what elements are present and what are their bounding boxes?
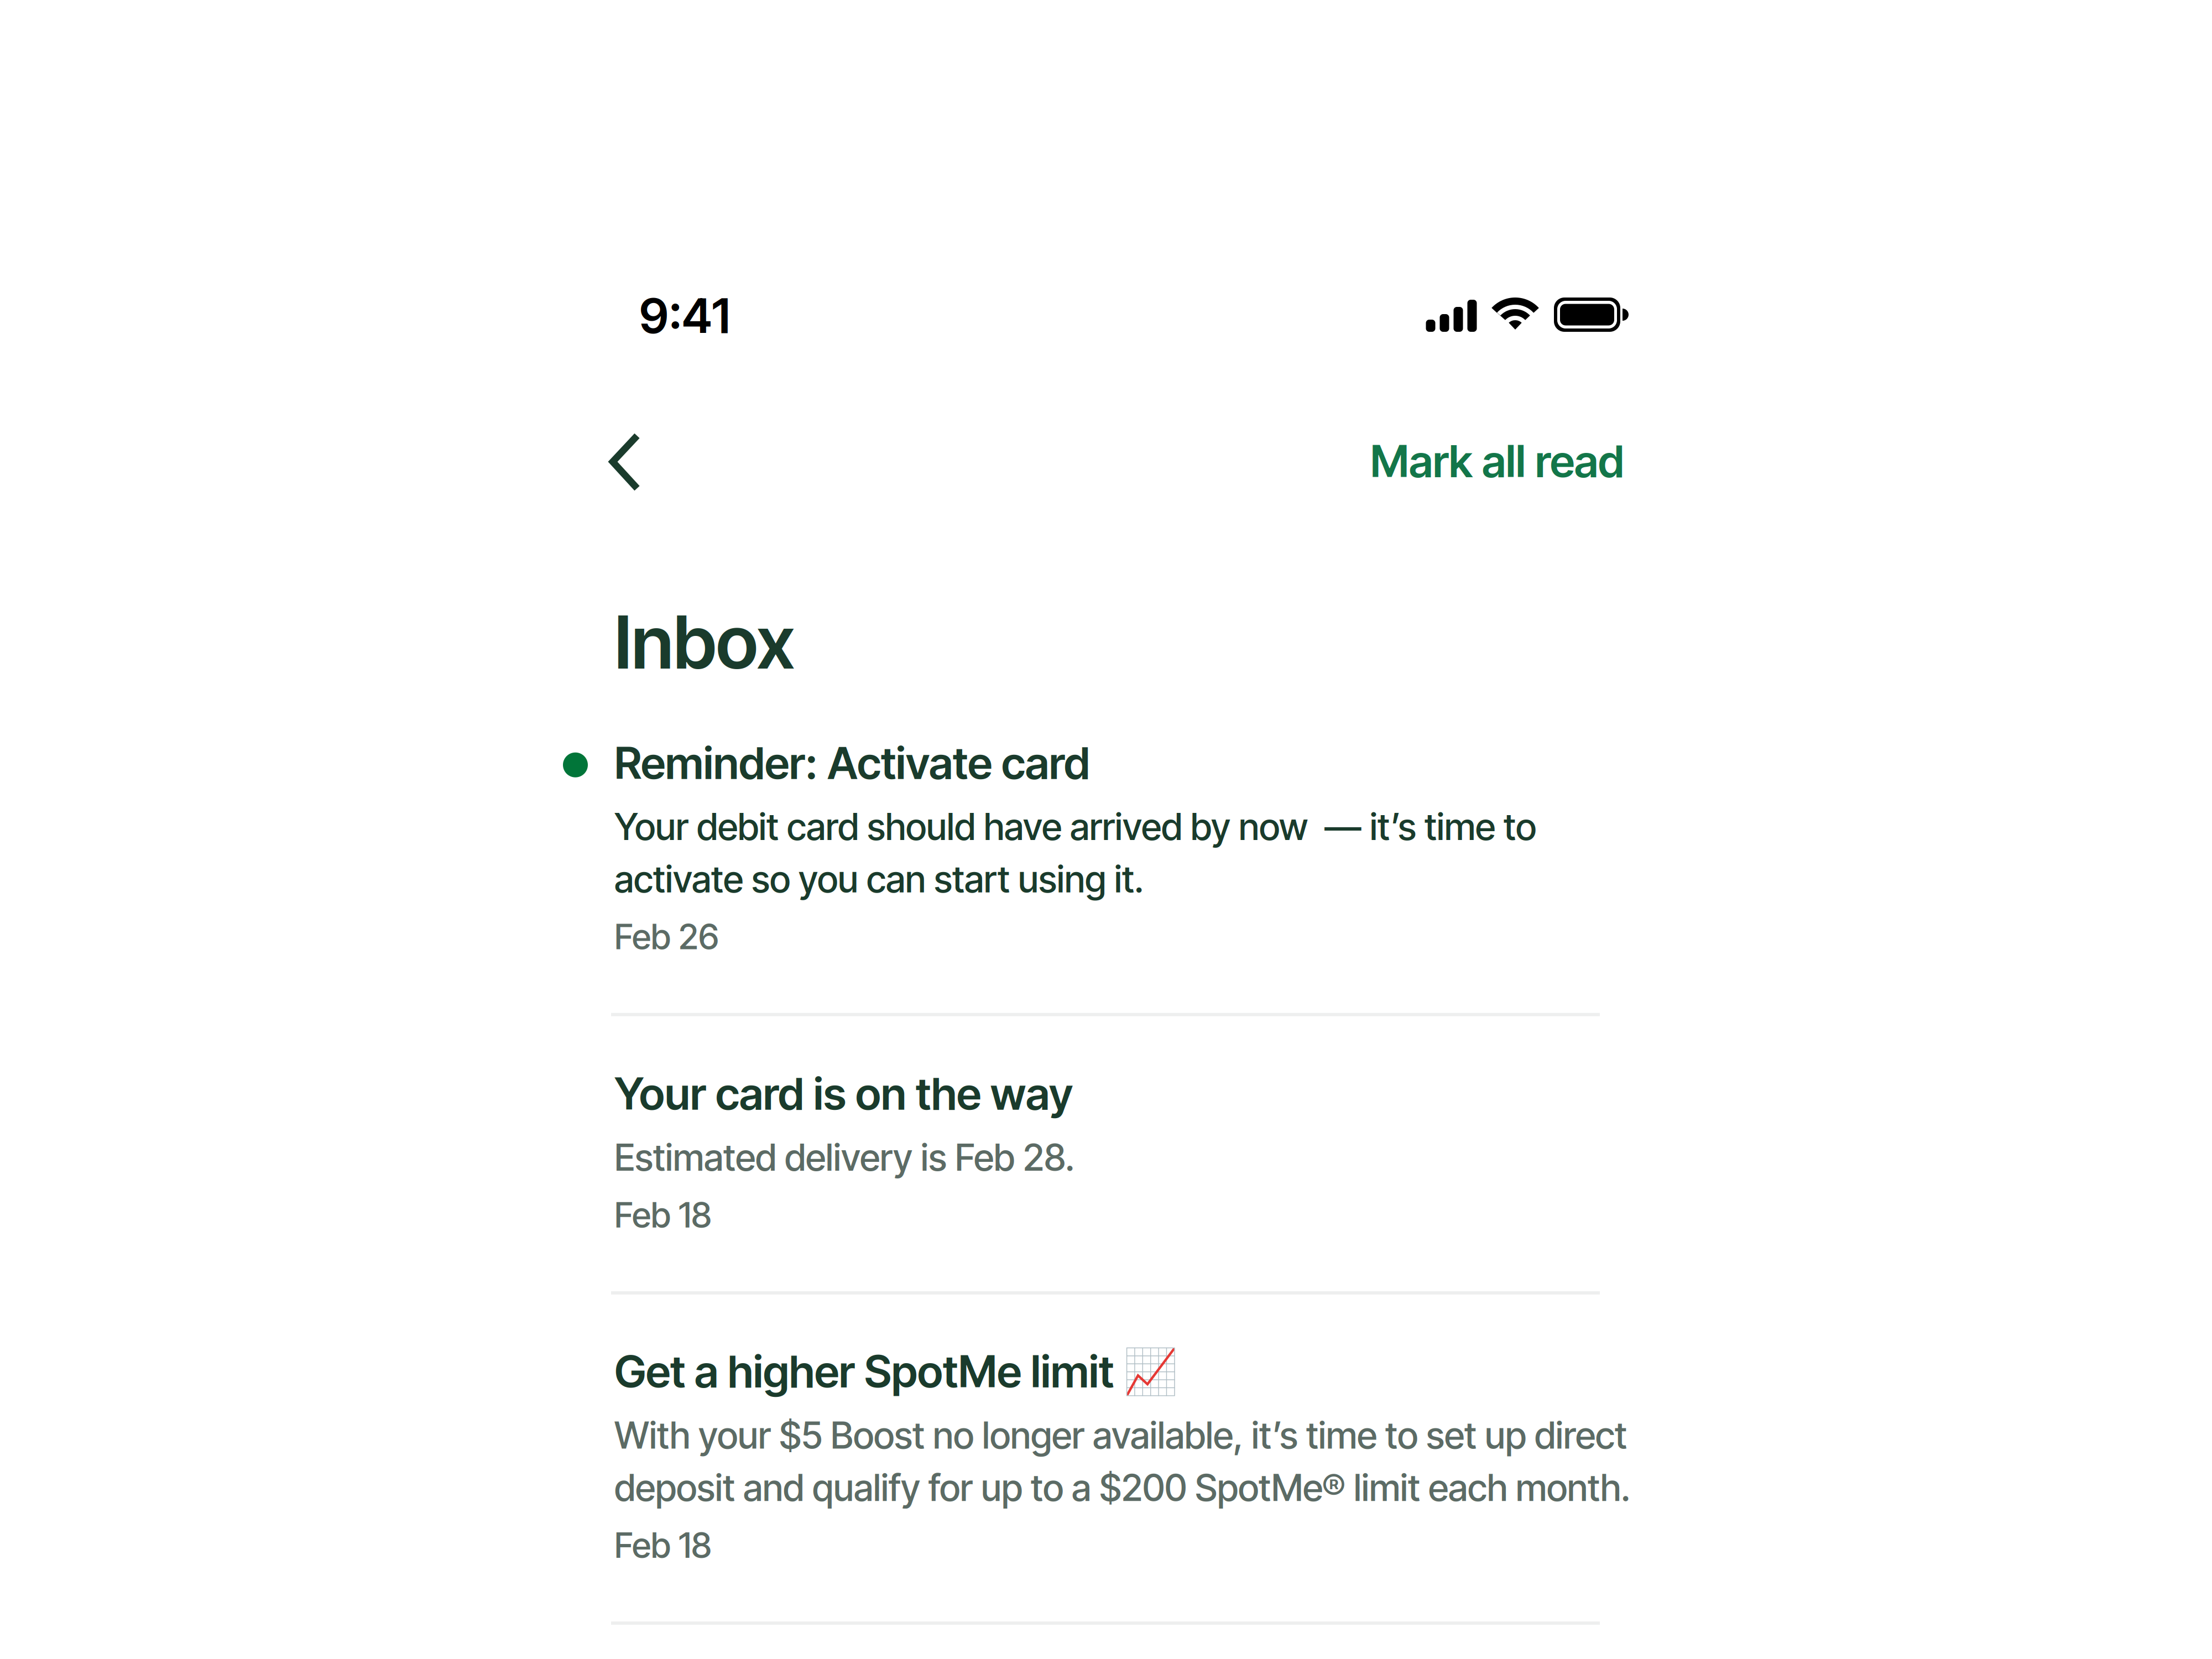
staticText: Feb 18 — [614, 1194, 712, 1236]
button[interactable]: Get a higher SpotMe limit 📈 — [0, 1344, 2212, 1566]
staticText: Your card is on the way — [614, 1067, 1073, 1120]
staticText: Your debit card should have arrived by n… — [614, 804, 1536, 901]
staticText: Estimated delivery is Feb 28. — [614, 1135, 1074, 1180]
staticText: With your $5 Boost no longer available, … — [614, 1413, 1630, 1510]
staticText: Reminder: Activate card — [614, 736, 1090, 789]
button[interactable]: Mark all read — [1370, 416, 2212, 505]
button[interactable]: Reminder: Activate card — [0, 736, 2212, 958]
button[interactable]: Your card is on the way — [0, 1067, 2212, 1236]
staticText: Mark all read — [1370, 434, 1624, 488]
staticText: Feb 18 — [614, 1524, 712, 1566]
button[interactable]: Back — [0, 418, 664, 504]
staticText: Inbox — [614, 598, 795, 686]
staticText: Get a higher SpotMe limit 📈 — [614, 1344, 1178, 1398]
staticText: Feb 26 — [614, 916, 719, 958]
staticText: 9:41 — [639, 287, 730, 345]
